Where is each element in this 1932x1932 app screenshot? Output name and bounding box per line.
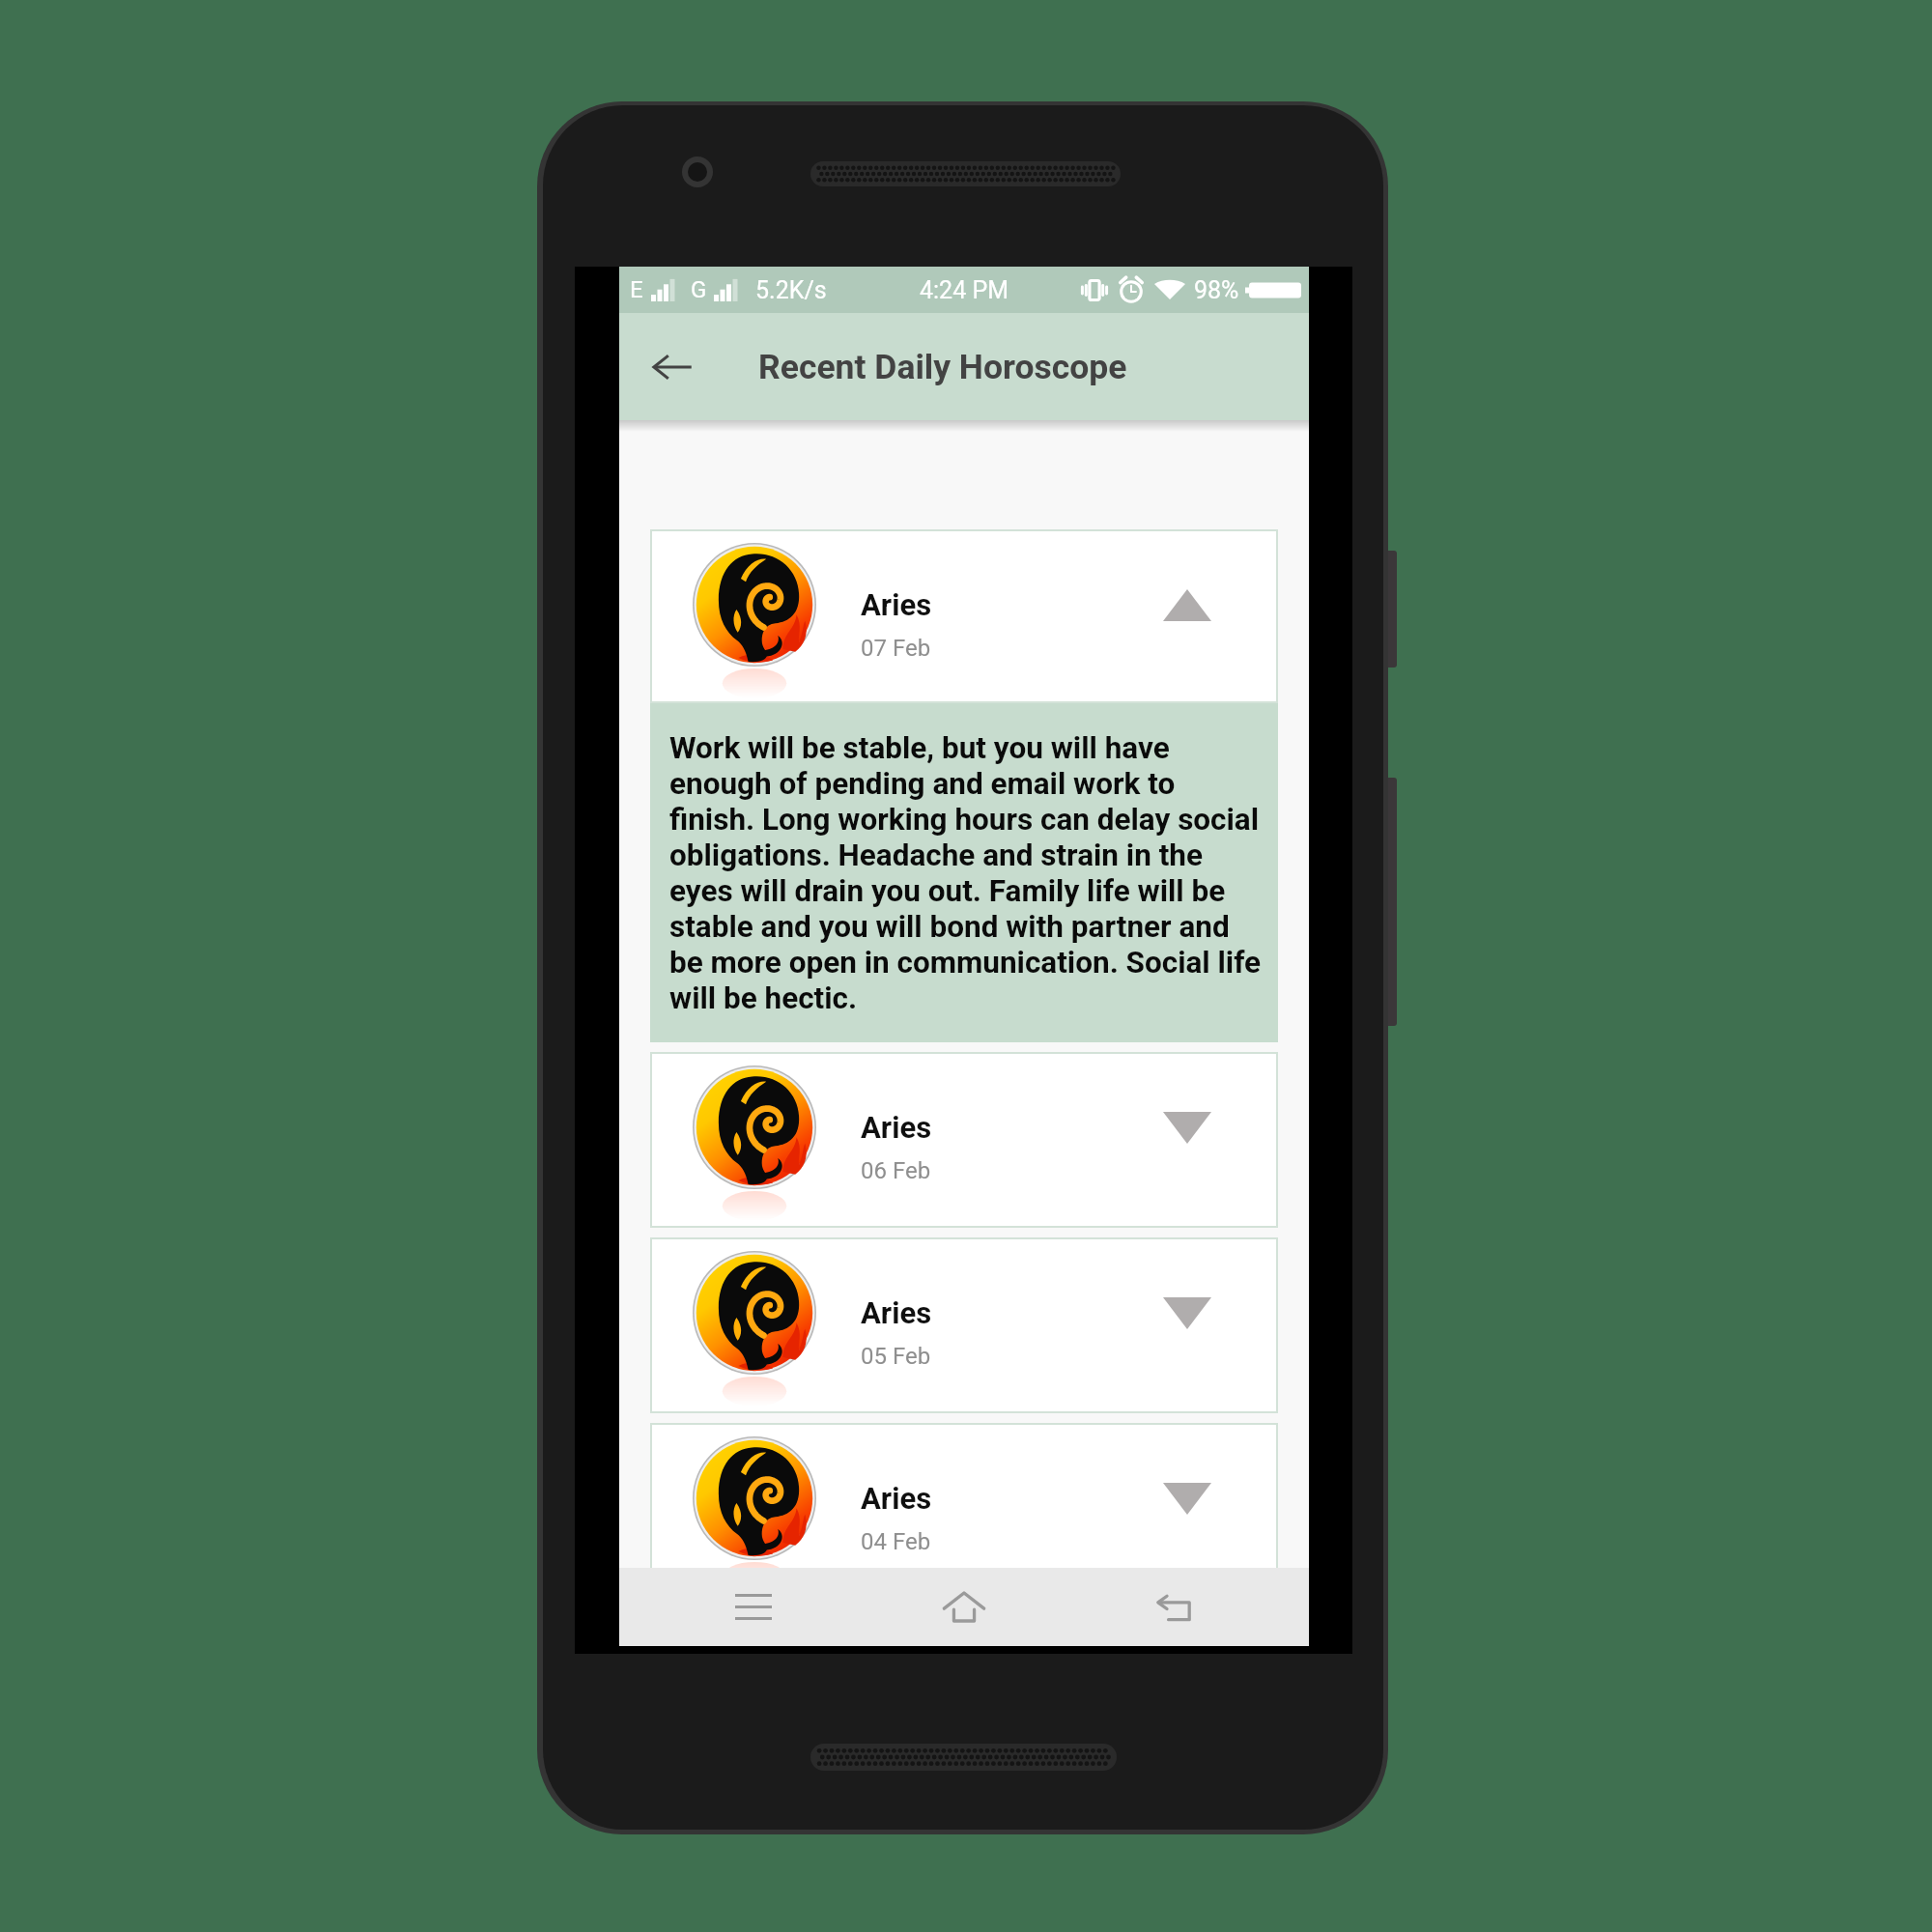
staticText: Aries [861,1481,932,1516]
staticText: 05 Feb [861,1343,931,1370]
staticText: Aries [861,1295,932,1330]
staticText: 98% [1194,276,1239,304]
button[interactable]: Menu [710,1568,797,1646]
staticText: 04 Feb [861,1528,931,1555]
staticText: E [630,276,643,303]
button[interactable]: Aries [650,529,1278,703]
staticText: 5.2K/s [755,276,827,304]
button[interactable]: Home [921,1568,1008,1646]
button[interactable]: Work will be stable, but you will have e… [650,703,1278,1042]
staticText: Work will be stable, but you will have e… [669,730,1264,1016]
staticText: Aries [861,1110,932,1145]
button[interactable]: Back [1131,1568,1218,1646]
staticText: Recent Daily Horoscope [758,347,1127,387]
button[interactable]: Aries [650,1237,1278,1413]
button[interactable]: Back [619,313,725,420]
button[interactable]: Aries [650,1423,1278,1599]
button[interactable]: Aries [650,1052,1278,1228]
staticText: 4:24 PM [920,276,1009,304]
staticText: G [691,276,707,303]
staticText: 06 Feb [861,1157,931,1184]
staticText: Aries [861,587,932,622]
staticText: 07 Feb [861,635,931,662]
